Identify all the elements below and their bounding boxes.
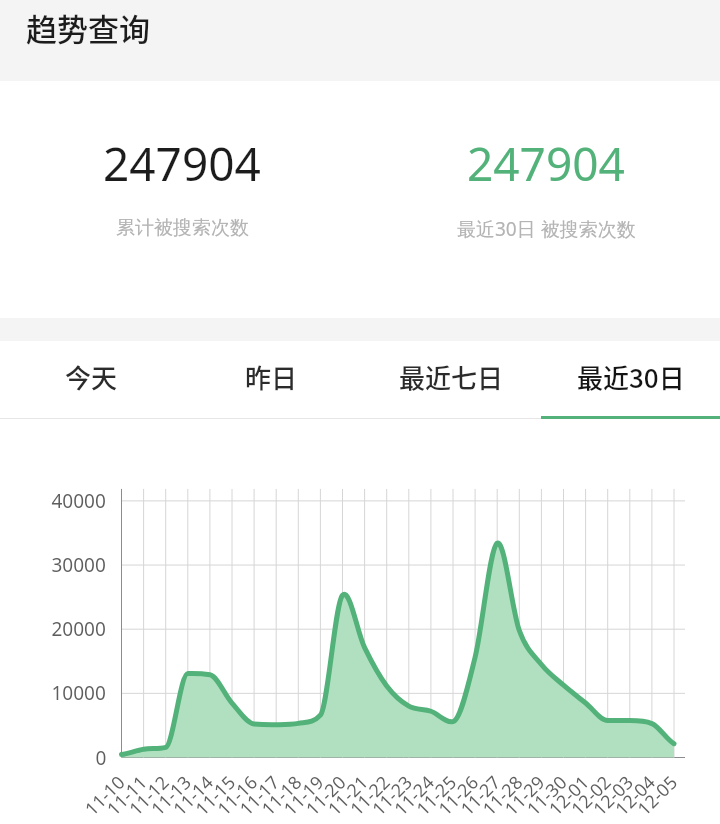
button[interactable]: 最近30日 (540, 341, 720, 419)
button[interactable]: 247904 (0, 81, 360, 318)
staticText: 趋势查询 (26, 5, 150, 50)
button[interactable]: 最近七日 (360, 341, 540, 419)
button[interactable]: 247904 (360, 81, 720, 318)
staticText: 最近30日 (577, 358, 685, 396)
staticText: 247904 (467, 132, 625, 195)
staticText: 累计被搜索次数 (116, 216, 249, 240)
staticText: 247904 (103, 132, 261, 195)
staticText: 最近七日 (399, 358, 504, 396)
button[interactable]: 今天 (0, 341, 180, 419)
staticText: 昨日 (245, 358, 298, 396)
staticText: 最近30日 被搜索次数 (457, 216, 636, 242)
button[interactable]: 昨日 (180, 341, 360, 419)
staticText: 今天 (65, 358, 118, 396)
